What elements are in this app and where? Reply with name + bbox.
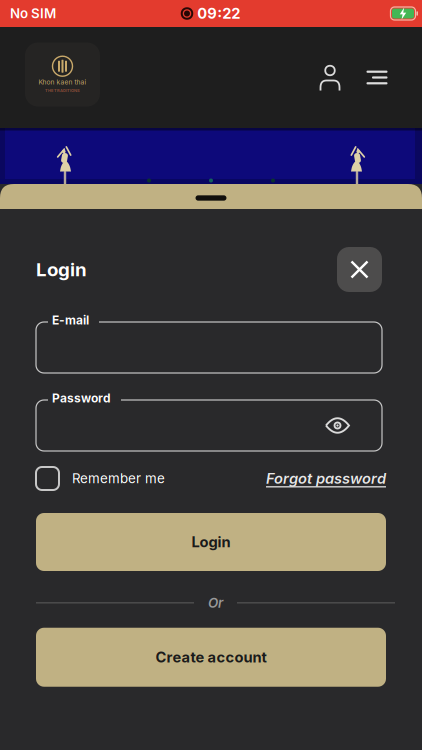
- staticText: Remember me: [72, 471, 165, 486]
- staticText: Forgot password: [266, 470, 386, 487]
- staticText: Create account: [155, 649, 266, 666]
- staticText: THE TRADITIONS: [45, 88, 80, 93]
- button[interactable]: Forgot password: [266, 470, 386, 487]
- button[interactable]: [318, 406, 356, 444]
- staticText: E-mail: [52, 313, 89, 327]
- button[interactable]: [313, 60, 347, 94]
- button[interactable]: Create account: [36, 628, 386, 687]
- button[interactable]: [360, 60, 394, 94]
- button[interactable]: Khon kaen thai: [25, 45, 100, 109]
- staticText: Or: [208, 595, 223, 611]
- staticText: 09:22: [197, 5, 240, 22]
- button[interactable]: [337, 247, 382, 292]
- staticText: Login: [191, 533, 230, 551]
- staticText: Login: [36, 258, 87, 280]
- staticText: No SIM: [10, 6, 56, 21]
- staticText: Password: [52, 391, 111, 405]
- button[interactable]: Login: [36, 513, 386, 571]
- button[interactable]: Remember me: [36, 467, 165, 490]
- staticText: Khon kaen thai: [38, 78, 86, 86]
